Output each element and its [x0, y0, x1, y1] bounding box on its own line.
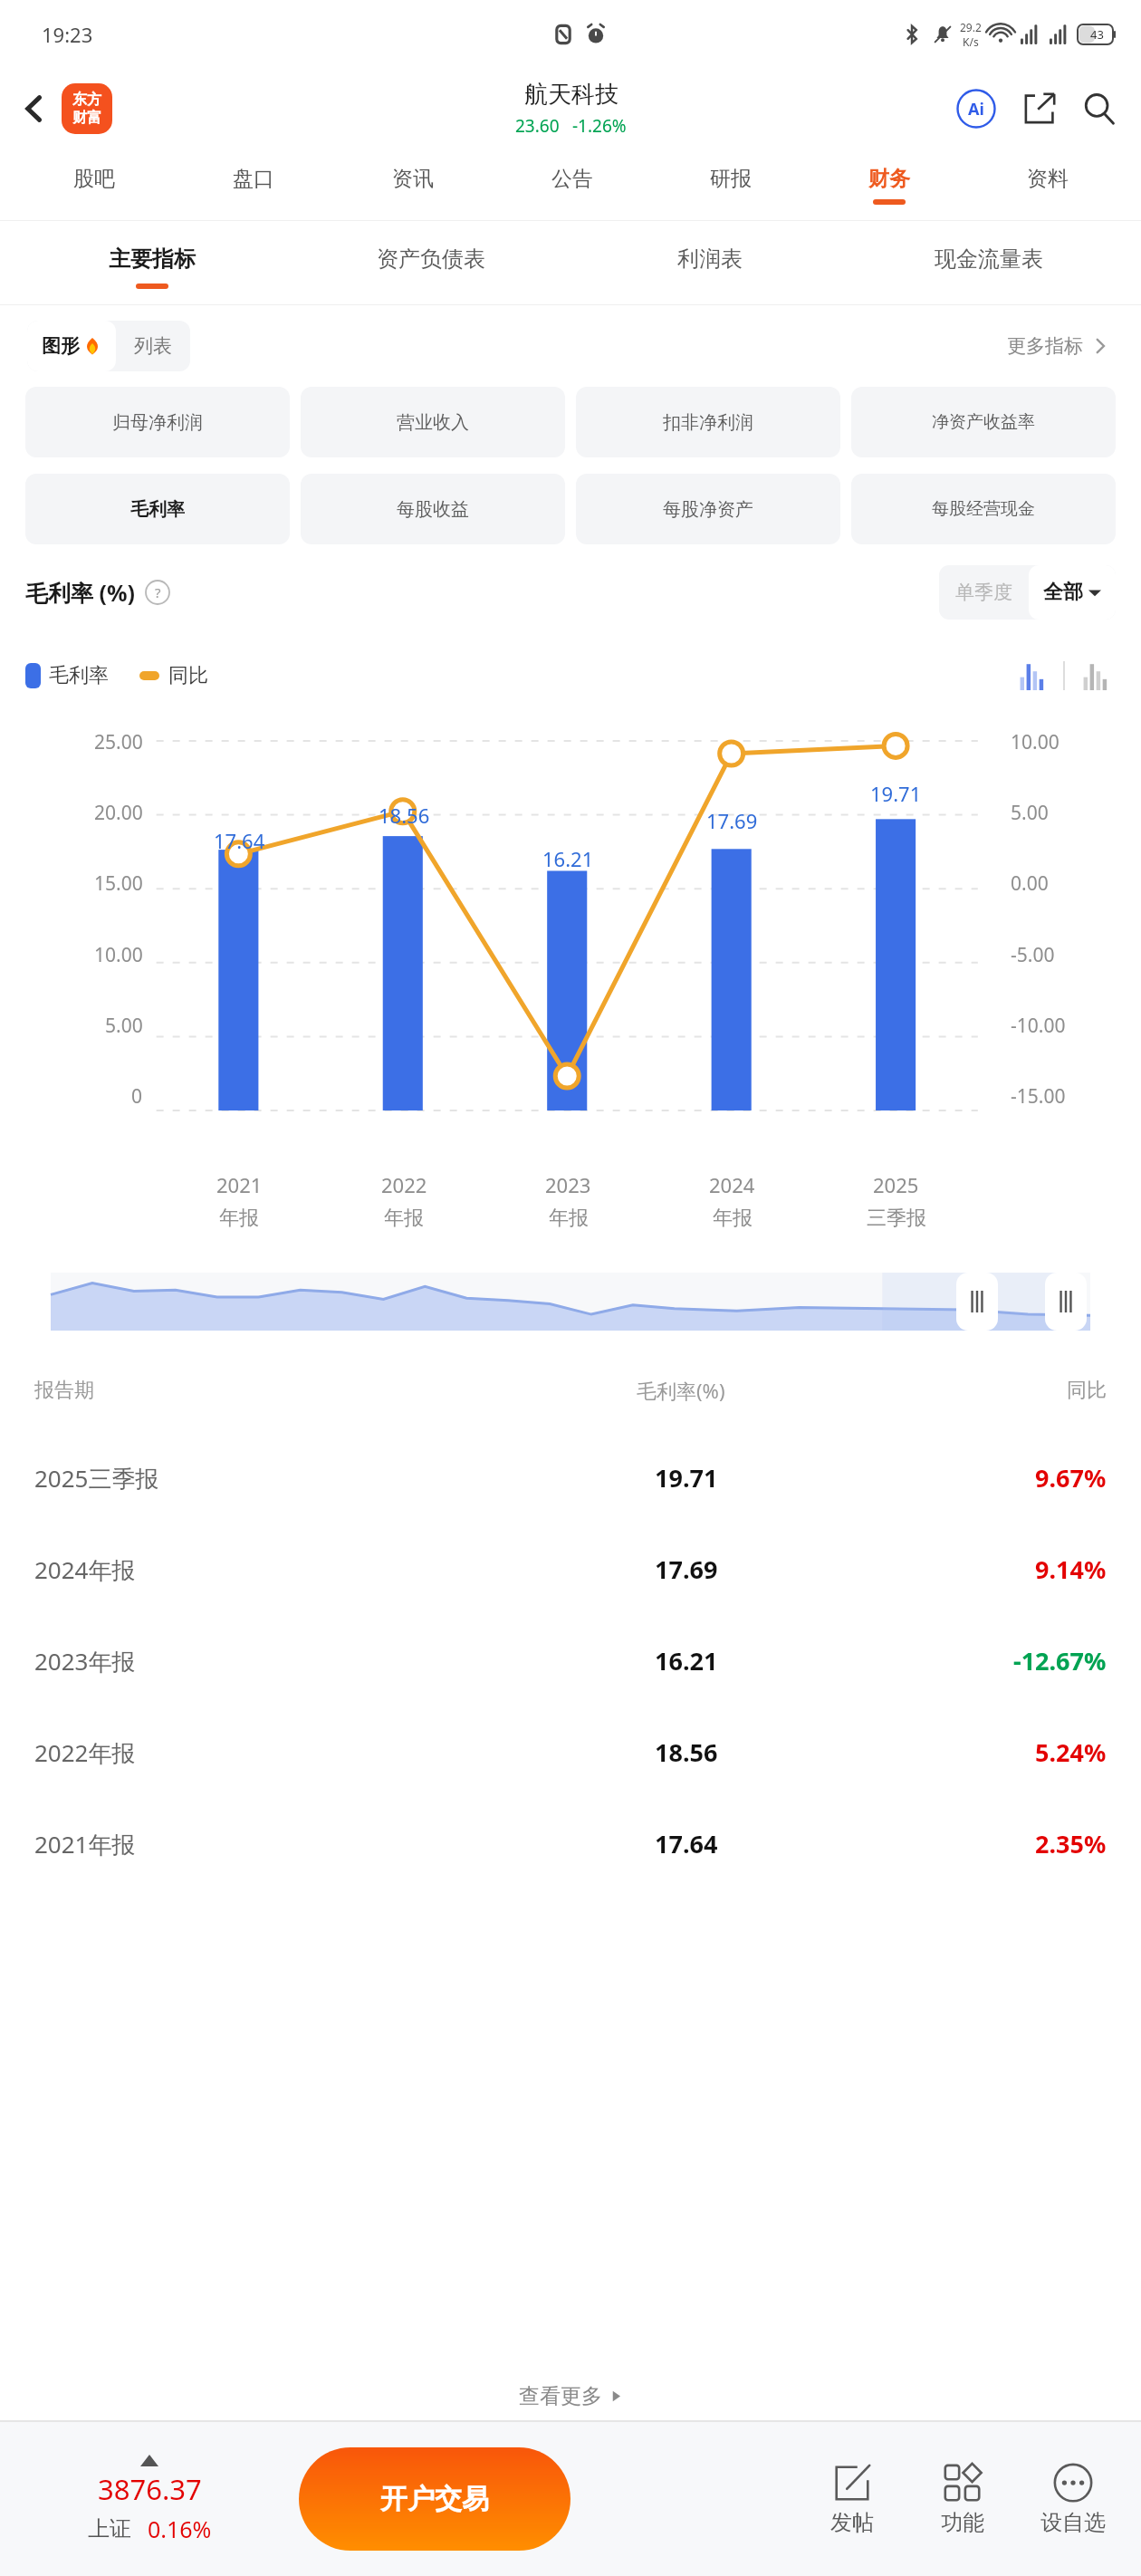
- button[interactable]: AI assistant: [951, 83, 1002, 134]
- staticText: 2023年报: [34, 1645, 391, 1677]
- button[interactable]: 查看更多: [0, 2371, 1141, 2420]
- staticText: 同比: [168, 663, 208, 688]
- staticText: 15.00: [94, 870, 143, 897]
- button[interactable]: 财务: [810, 149, 968, 221]
- staticText: 17.64: [214, 827, 265, 854]
- staticText: 盘口: [233, 166, 274, 192]
- staticText: Ai: [968, 98, 984, 120]
- button[interactable]: 现金流量表: [849, 221, 1128, 304]
- staticText: 43: [1090, 26, 1104, 43]
- staticText: ?: [155, 583, 161, 601]
- button[interactable]: 利润表: [570, 221, 849, 304]
- button[interactable]: 2024年报: [34, 1523, 1107, 1615]
- button[interactable]: 净资产收益率: [851, 387, 1116, 457]
- button[interactable]: 每股经营现金: [851, 474, 1116, 544]
- staticText: 更多指标: [1007, 334, 1083, 358]
- button[interactable]: 每股收益: [301, 474, 565, 544]
- staticText: 16.21: [655, 1644, 718, 1677]
- button[interactable]: 单季度: [955, 565, 1012, 620]
- button[interactable]: 2023年报: [34, 1615, 1107, 1706]
- staticText: 9.67%: [1035, 1461, 1107, 1495]
- button[interactable]: 全部: [1043, 565, 1101, 620]
- button[interactable]: 2021年报: [34, 1798, 1107, 1889]
- staticText: 5.00: [105, 1013, 143, 1039]
- button[interactable]: 开户交易: [299, 2447, 570, 2551]
- staticText: 资讯: [392, 166, 434, 192]
- button[interactable]: Search: [1074, 83, 1125, 134]
- button[interactable]: Column chart view: [1076, 656, 1116, 696]
- button[interactable]: East Money logo: [62, 83, 112, 134]
- button[interactable]: 研报: [651, 149, 810, 221]
- staticText: 3876.37: [98, 2470, 202, 2508]
- staticText: 图形: [42, 334, 80, 358]
- staticText: 上证: [88, 2515, 131, 2542]
- staticText: 每股收益: [397, 498, 469, 521]
- staticText: 功能: [941, 2509, 984, 2536]
- staticText: 0: [131, 1083, 143, 1110]
- button[interactable]: 资产负债表: [292, 221, 570, 304]
- button[interactable]: Share: [1014, 83, 1065, 134]
- button[interactable]: 列表: [134, 321, 172, 371]
- button[interactable]: 资料: [968, 149, 1127, 221]
- staticText: 资产负债表: [377, 245, 485, 273]
- staticText: 17.69: [706, 807, 758, 834]
- staticText: 16.21: [542, 845, 594, 872]
- staticText: 毛利率: [49, 663, 109, 688]
- staticText: 19.71: [870, 780, 922, 807]
- button[interactable]: 2025三季报: [34, 1432, 1107, 1523]
- staticText: 每股净资产: [663, 498, 753, 521]
- staticText: 全部: [1043, 580, 1083, 605]
- button[interactable]: Back: [11, 85, 58, 132]
- staticText: 利润表: [677, 245, 743, 273]
- button[interactable]: 扣非净利润: [576, 387, 840, 457]
- button[interactable]: 营业收入: [301, 387, 565, 457]
- staticText: 年报: [219, 1206, 259, 1231]
- staticText: 2024年报: [34, 1553, 391, 1586]
- button[interactable]: 功能: [907, 2462, 1018, 2536]
- staticText: 毛利率(%): [637, 1377, 725, 1404]
- staticText: 2.35%: [1035, 1827, 1107, 1860]
- staticText: 开户交易: [380, 2482, 489, 2516]
- button[interactable]: 公告: [493, 149, 651, 221]
- staticText: 23.60: [515, 114, 560, 138]
- staticText: 29.2: [960, 20, 982, 34]
- staticText: 研报: [710, 166, 752, 192]
- button[interactable]: 更多指标: [1002, 329, 1114, 363]
- button[interactable]: 主要指标: [13, 221, 292, 304]
- staticText: K/s: [963, 34, 979, 49]
- button[interactable]: 毛利率: [25, 474, 290, 544]
- button[interactable]: Range handle: [956, 1273, 998, 1331]
- button[interactable]: 归母净利润: [25, 387, 290, 457]
- button[interactable]: Range handle: [1045, 1273, 1087, 1331]
- button[interactable]: Bar chart view: [1012, 656, 1052, 696]
- button[interactable]: 设自选: [1018, 2462, 1128, 2536]
- staticText: 0.16%: [148, 2514, 212, 2544]
- staticText: -1.26%: [572, 114, 627, 138]
- button[interactable]: 每股净资产: [576, 474, 840, 544]
- button[interactable]: 发帖: [797, 2462, 907, 2536]
- staticText: 0.00: [1011, 870, 1049, 897]
- button[interactable]: 3876.37: [0, 2455, 299, 2544]
- button[interactable]: 2022年报: [34, 1706, 1107, 1798]
- staticText: 单季度: [955, 581, 1012, 604]
- staticText: 发帖: [830, 2509, 874, 2536]
- button[interactable]: 图形: [42, 321, 101, 371]
- staticText: 毛利率: [130, 498, 185, 521]
- staticText: 2022: [381, 1171, 427, 1198]
- staticText: 10.00: [94, 942, 143, 968]
- button[interactable]: 盘口: [174, 149, 333, 221]
- staticText: 2021: [216, 1171, 263, 1198]
- button[interactable]: 股吧: [14, 149, 174, 221]
- staticText: -15.00: [1011, 1083, 1066, 1110]
- staticText: 股吧: [73, 166, 115, 192]
- staticText: 5.00: [1011, 800, 1049, 826]
- staticText: 年报: [384, 1206, 424, 1231]
- staticText: 19.71: [655, 1461, 718, 1495]
- staticText: 2021年报: [34, 1828, 391, 1860]
- button[interactable]: 资讯: [333, 149, 493, 221]
- staticText: 公告: [551, 166, 593, 192]
- staticText: 2025三季报: [34, 1462, 391, 1495]
- staticText: 资料: [1027, 166, 1069, 192]
- staticText: 18.56: [655, 1735, 718, 1769]
- staticText: 毛利率 (%): [25, 577, 136, 608]
